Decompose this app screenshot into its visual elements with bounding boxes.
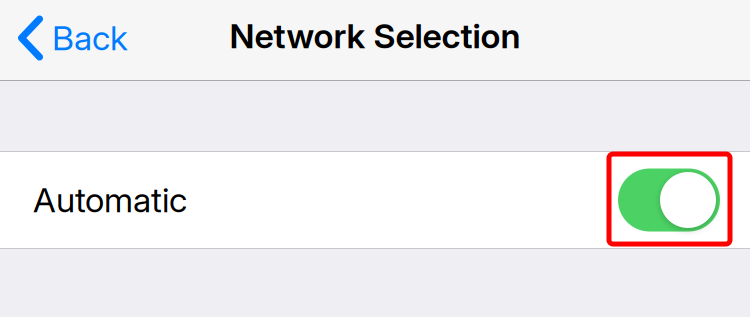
button[interactable]: Automatic network selection, on (618, 168, 720, 231)
staticText: Network Selection (229, 15, 520, 56)
staticText: Back (52, 17, 128, 58)
button[interactable]: Back (0, 9, 140, 71)
staticText: Automatic (33, 179, 187, 220)
button[interactable]: Automatic (0, 152, 750, 248)
